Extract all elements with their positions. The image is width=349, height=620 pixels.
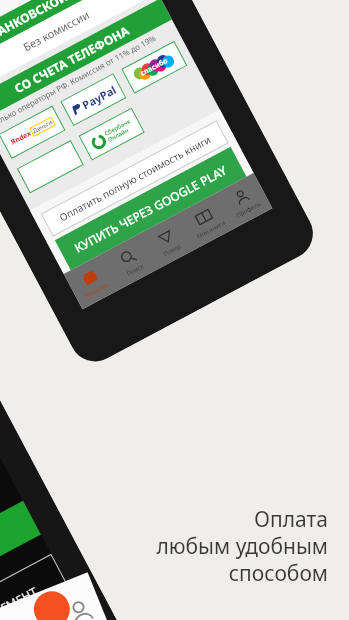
staticText: СО СЧЕТА ТЕЛЕФОНА bbox=[11, 22, 132, 96]
button[interactable]: Яndex bbox=[0, 106, 65, 159]
button[interactable]: Поиск bbox=[102, 234, 158, 289]
button[interactable]: Профиль bbox=[216, 173, 272, 228]
staticText: Оплатить полную стоимость книги bbox=[57, 132, 213, 224]
staticText: Мои книги bbox=[195, 218, 227, 241]
button[interactable]: ПРОЧИТАТЬ ФРАГМЕНТ bbox=[0, 554, 75, 620]
button[interactable]: PayPal bbox=[60, 73, 126, 126]
button[interactable]: Оплатить полную стоимость книги bbox=[41, 120, 229, 237]
staticText: Сбербанк Онлайн bbox=[103, 117, 136, 144]
button[interactable]: Сбербанк Онлайн bbox=[79, 108, 145, 161]
staticText: Плеер bbox=[162, 242, 183, 258]
staticText: Магазин bbox=[84, 280, 111, 300]
staticText: спасибо bbox=[139, 56, 170, 79]
button[interactable]: Мои книги bbox=[178, 193, 234, 249]
staticText: Поиск bbox=[125, 262, 145, 278]
staticText: Только операторы РФ. Комиссия от 11% до … bbox=[0, 32, 158, 129]
staticText: ПРОЧИТАТЬ ФРАГМЕНТ bbox=[0, 583, 40, 620]
staticText: Деньги bbox=[31, 118, 54, 135]
button[interactable]: Плеер bbox=[140, 213, 196, 269]
button[interactable] bbox=[0, 501, 41, 620]
button[interactable]: КУПИТЬ ЧЕРЕЗ GOOGLE PLAY bbox=[55, 147, 246, 270]
staticText: Оплата любым удобным способом bbox=[156, 505, 328, 587]
staticText: КУПИТЬ ЧЕРЕЗ GOOGLE PLAY bbox=[71, 161, 230, 256]
button[interactable]: спасибо bbox=[121, 41, 187, 94]
staticText: С БАНКОВСКОЙ КАРТЫ bbox=[0, 0, 110, 47]
staticText: PayPal bbox=[79, 82, 119, 112]
staticText: Яndex bbox=[9, 129, 33, 148]
button[interactable] bbox=[17, 140, 84, 193]
staticText: Профиль bbox=[235, 200, 262, 219]
button[interactable]: Магазин bbox=[64, 254, 120, 309]
staticText: Без комиссии bbox=[20, 7, 92, 54]
